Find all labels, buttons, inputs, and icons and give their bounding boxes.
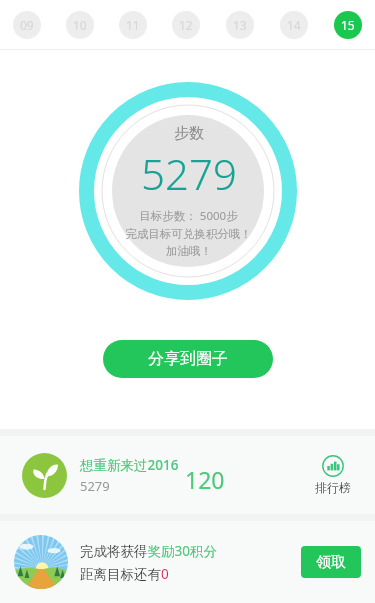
staticText: 10 <box>73 17 87 33</box>
button[interactable]: 想重新来过2016 <box>0 436 375 514</box>
staticText: 11 <box>126 17 140 33</box>
button[interactable]: 排行榜 <box>305 451 361 499</box>
staticText: 想重新来过2016 <box>80 456 179 474</box>
staticText: 目标步数： 5000步 <box>139 208 238 224</box>
staticText: 距离目标还有0 <box>80 565 169 583</box>
staticText: 120 <box>185 464 225 495</box>
staticText: 13 <box>233 17 247 33</box>
button[interactable]: 领取 <box>301 546 361 578</box>
button[interactable]: 13 <box>226 11 254 39</box>
button[interactable]: 15 <box>334 11 362 39</box>
button[interactable]: 分享到圈子 <box>103 340 273 378</box>
staticText: 加油哦！ <box>166 244 212 258</box>
staticText: 分享到圈子 <box>148 349 228 369</box>
button[interactable]: 09 <box>13 11 41 39</box>
staticText: 完成目标可兑换积分哦！ <box>125 227 252 241</box>
button[interactable]: 11 <box>119 11 147 39</box>
staticText: 5279 <box>141 145 237 202</box>
staticText: 步数 <box>174 124 204 143</box>
button[interactable]: 14 <box>280 11 308 39</box>
staticText: 完成将获得奖励30积分 <box>80 542 217 560</box>
staticText: 09 <box>20 17 34 33</box>
staticText: 领取 <box>316 553 346 572</box>
staticText: 15 <box>341 17 355 33</box>
staticText: 排行榜 <box>315 480 351 495</box>
button[interactable]: 12 <box>172 11 200 39</box>
staticText: 12 <box>179 17 193 33</box>
staticText: 5279 <box>80 477 110 495</box>
staticText: 14 <box>287 17 301 33</box>
button[interactable]: 10 <box>66 11 94 39</box>
